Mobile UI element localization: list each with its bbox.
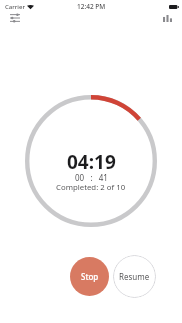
staticText: Stop <box>81 271 99 282</box>
staticText: Resume <box>119 271 150 282</box>
button[interactable]: Resume <box>113 255 156 298</box>
button[interactable]: Settings <box>2 7 28 29</box>
staticText: 00 : 41 <box>75 172 108 183</box>
staticText: Carrier <box>5 3 25 11</box>
button[interactable]: Stop <box>70 257 109 296</box>
button[interactable]: Statistics <box>154 7 180 29</box>
staticText: 12:42 PM <box>77 2 106 11</box>
staticText: 04:19 <box>67 149 116 175</box>
staticText: Completed: 2 of 10 <box>56 182 126 193</box>
